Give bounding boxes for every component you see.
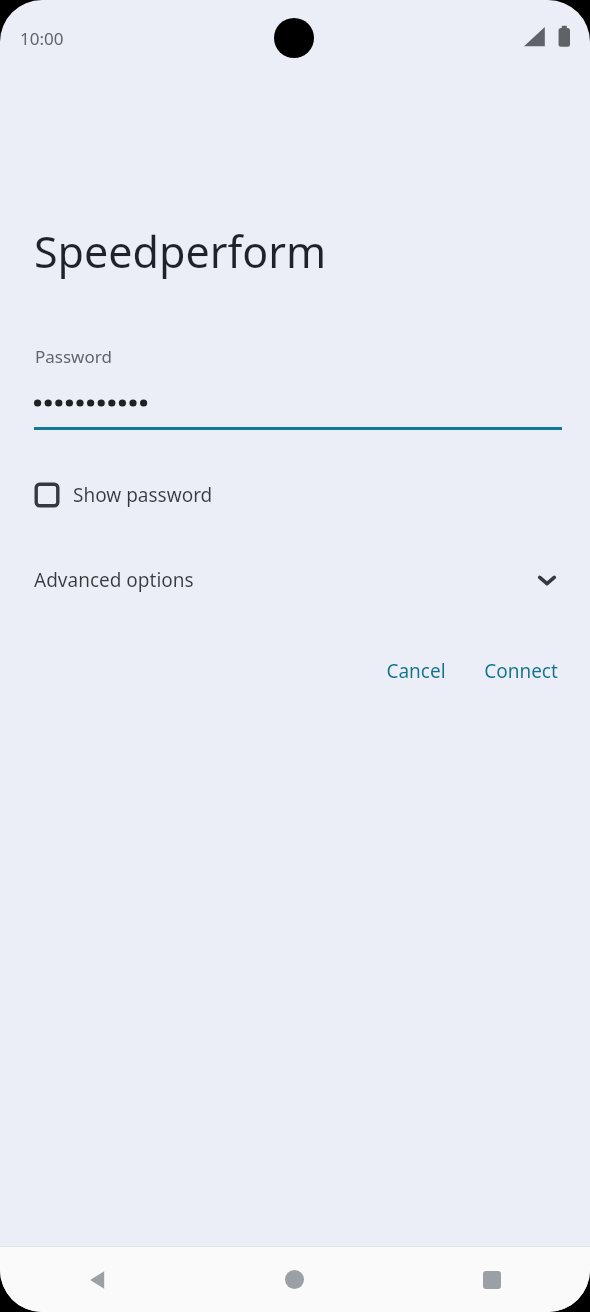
staticText: Password [35,345,112,368]
button[interactable]: Advanced options [0,556,590,604]
button[interactable] [34,386,562,430]
staticText: Speedperform [34,222,327,281]
button[interactable]: Back [0,1247,196,1312]
staticText: 10:00 [20,27,64,50]
other: Expand advanced options [534,567,560,593]
staticText: Connect [484,658,558,684]
staticText: Cancel [386,658,446,684]
button[interactable]: Show password [34,472,227,518]
button[interactable]: Home [196,1247,393,1312]
button[interactable]: Cancel [372,648,460,694]
button[interactable]: Recent apps [393,1247,590,1312]
button[interactable]: Connect [470,648,572,694]
staticText: Advanced options [34,567,194,593]
staticText: Show password [73,482,213,508]
